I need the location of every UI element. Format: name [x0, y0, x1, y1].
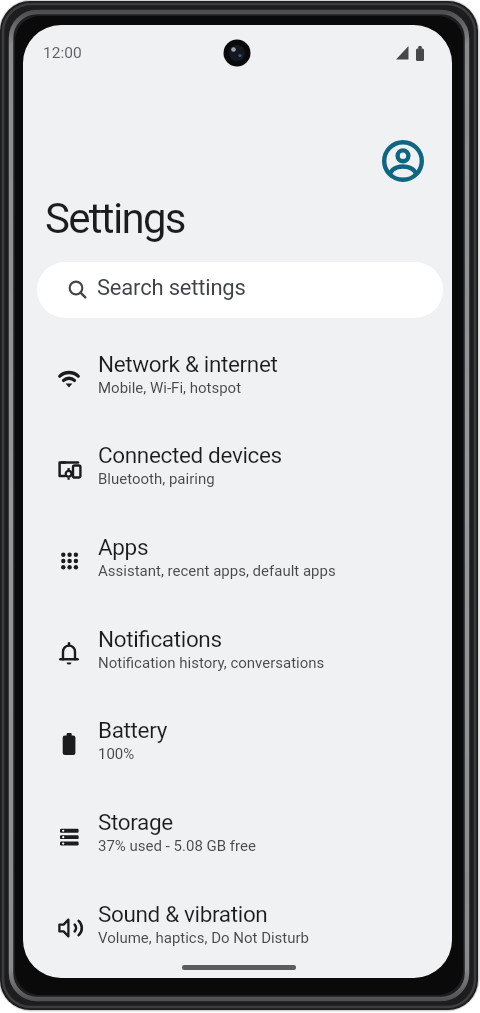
button[interactable]: Battery [23, 703, 452, 795]
staticText: Volume, haptics, Do Not Disturb [98, 929, 310, 947]
button[interactable]: Sound & vibration [23, 887, 452, 978]
staticText: Sound & vibration [98, 901, 268, 927]
staticText: Settings [45, 194, 185, 243]
staticText: Battery [98, 717, 167, 743]
staticText: 12:00 [43, 44, 82, 62]
staticText: 37% used - 5.08 GB free [98, 837, 256, 855]
staticText: Assistant, recent apps, default apps [98, 562, 336, 580]
button[interactable]: Apps [23, 520, 452, 612]
button[interactable]: Search settings [37, 262, 443, 318]
button[interactable]: Connected devices [23, 428, 452, 520]
staticText: Notifications [98, 626, 222, 652]
staticText: Bluetooth, pairing [98, 470, 215, 488]
staticText: Storage [98, 809, 173, 835]
button[interactable] [380, 138, 426, 184]
staticText: Search settings [97, 275, 246, 301]
staticText: 100% [98, 745, 135, 763]
staticText: Notification history, conversations [98, 654, 325, 672]
staticText: Mobile, Wi-Fi, hotspot [98, 379, 242, 397]
staticText: Apps [98, 534, 149, 560]
button[interactable]: Network & internet [23, 337, 452, 429]
button[interactable]: Storage [23, 795, 452, 887]
staticText: Connected devices [98, 442, 282, 468]
staticText: Network & internet [98, 351, 278, 377]
button[interactable]: Notifications [23, 612, 452, 704]
